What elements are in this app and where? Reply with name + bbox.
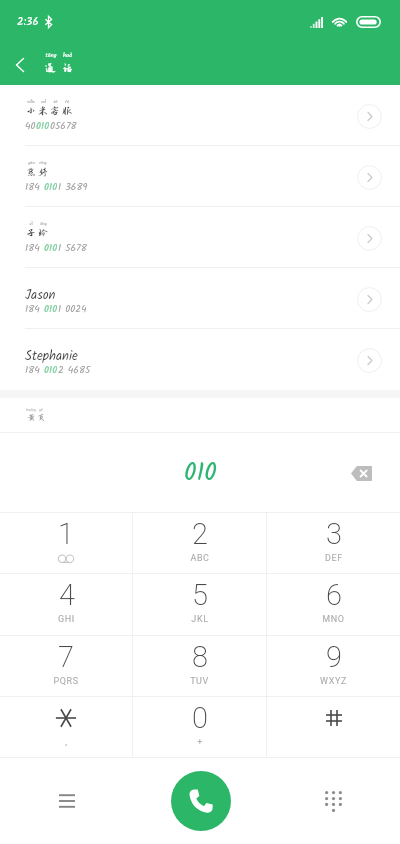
staticText: 1 5678 [58,240,87,256]
staticText: yàn [28,159,35,166]
staticText: 通 [45,61,56,73]
staticText: 3 [326,517,342,551]
button[interactable]: Back [0,45,40,85]
button[interactable]: 2 [133,513,266,573]
staticText: TUV [190,676,209,687]
staticText: 2:36 [17,13,39,31]
staticText: 客 [50,105,60,116]
button[interactable]: 0 [133,697,266,757]
staticText: 玲 [38,227,48,238]
staticText: 1 [58,517,74,551]
staticText: 小 [26,105,36,116]
staticText: 米 [38,105,48,116]
button[interactable]: 4 [0,574,132,635]
staticText: 0 [192,701,208,735]
staticText: líng [40,220,47,227]
button[interactable]: 7 [0,636,132,696]
staticText: Jason [25,285,56,306]
staticText: 话 [62,61,73,73]
button[interactable]: Contact details [352,282,386,316]
staticText: huà [63,51,72,61]
staticText: fú [65,98,69,105]
staticText: 1 0024 [58,301,87,317]
staticText: 8 [192,640,208,674]
button[interactable]: Call [171,771,231,831]
staticText: 1 3689 [58,179,88,195]
staticText: 2 4685 [58,362,91,378]
button[interactable]: xiǎo [0,85,400,146]
staticText: huáng [26,407,36,413]
staticText: tíng [39,159,47,166]
staticText: 4 [59,578,75,612]
staticText: 2 [192,517,208,551]
staticText: , [65,737,68,748]
staticText: Stephanie [25,346,78,367]
staticText: yè [39,407,43,413]
button[interactable]: Contact details [352,221,386,255]
staticText: 184 [25,240,44,256]
staticText: JKL [191,614,209,625]
staticText: 010 [44,240,58,256]
staticText: MNO [322,614,345,625]
staticText: PQRS [53,676,79,687]
button[interactable] [267,697,400,757]
staticText: 010 [184,453,217,493]
button[interactable]: 8 [133,636,266,696]
staticText: DEF [325,553,343,564]
staticText: 010 [36,118,50,134]
staticText: xiǎo [27,98,35,105]
staticText: 184 [25,179,44,195]
button[interactable]: 6 [267,574,400,635]
button[interactable]: Contact details [352,343,386,377]
staticText: 010 [44,362,58,378]
staticText: WXYZ [320,676,347,687]
button[interactable]: 1 [0,513,132,573]
staticText: 婷 [38,166,48,177]
button[interactable]: yàn [0,146,400,207]
button[interactable]: Contact details [352,99,386,133]
staticText: zǐ [29,220,33,227]
staticText: 05678 [50,118,77,134]
staticText: mǐ [41,98,46,105]
staticText: 184 [25,301,44,317]
button[interactable]: Backspace [341,453,381,493]
button[interactable]: 9 [267,636,400,696]
staticText: 5 [192,578,208,612]
staticText: tōng [45,51,57,61]
staticText: 页 [37,413,46,422]
staticText: 服 [62,105,72,116]
staticText: ABC [190,553,210,564]
button[interactable]: huáng [0,398,400,432]
staticText: 010 [44,301,58,317]
button[interactable]: Contact details [352,160,386,194]
staticText: 燕 [26,166,36,177]
staticText: 7 [58,640,74,674]
button[interactable]: 3 [267,513,400,573]
staticText: + [197,737,203,748]
staticText: 184 [25,362,44,378]
button[interactable]: Jason [0,268,400,329]
staticText: 40 [25,118,36,134]
staticText: 子 [26,227,36,238]
staticText: kè [53,98,58,105]
button[interactable]: , [0,697,132,757]
button[interactable]: Menu [0,758,134,844]
staticText: 黄 [27,413,36,422]
staticText: 6 [326,578,342,612]
button[interactable]: Stephanie [0,329,400,390]
button[interactable]: zǐ [0,207,400,268]
button[interactable]: 5 [133,574,266,635]
staticText: 9 [326,640,342,674]
button[interactable]: Dialpad [267,758,400,844]
staticText: GHI [58,614,75,625]
staticText: 010 [44,179,58,195]
